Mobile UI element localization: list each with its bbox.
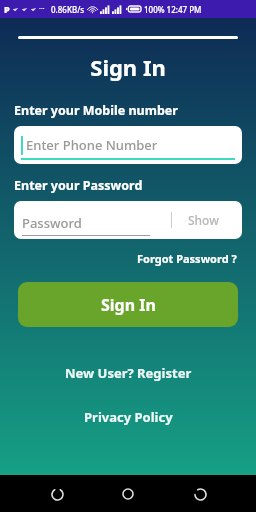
staticText: Sign In xyxy=(101,294,156,316)
button[interactable]: New User? Register xyxy=(61,360,196,386)
button[interactable]: Privacy Policy xyxy=(80,404,177,430)
staticText: Enter Phone Number xyxy=(26,136,158,154)
button[interactable]: Password xyxy=(14,201,242,239)
button[interactable]: Sign In xyxy=(18,282,238,327)
button[interactable]: Show xyxy=(172,201,234,239)
staticText: Enter your Password xyxy=(14,177,143,194)
staticText: Enter your Mobile number xyxy=(14,102,178,119)
staticText: Show xyxy=(188,212,219,228)
button[interactable]: Enter Phone Number xyxy=(14,126,242,164)
staticText: Sign In xyxy=(0,52,256,82)
staticText: 100% 12:47 PM xyxy=(144,4,202,15)
staticText: 0.86KB/s xyxy=(51,4,85,15)
button[interactable]: Recents xyxy=(42,479,72,509)
button[interactable]: Forgot Password ? xyxy=(134,248,240,269)
staticText: Password xyxy=(22,214,82,232)
staticText: ··· xyxy=(39,4,45,14)
staticText: P xyxy=(4,3,10,15)
button[interactable]: Home xyxy=(113,479,143,509)
button[interactable]: Back xyxy=(185,479,215,509)
